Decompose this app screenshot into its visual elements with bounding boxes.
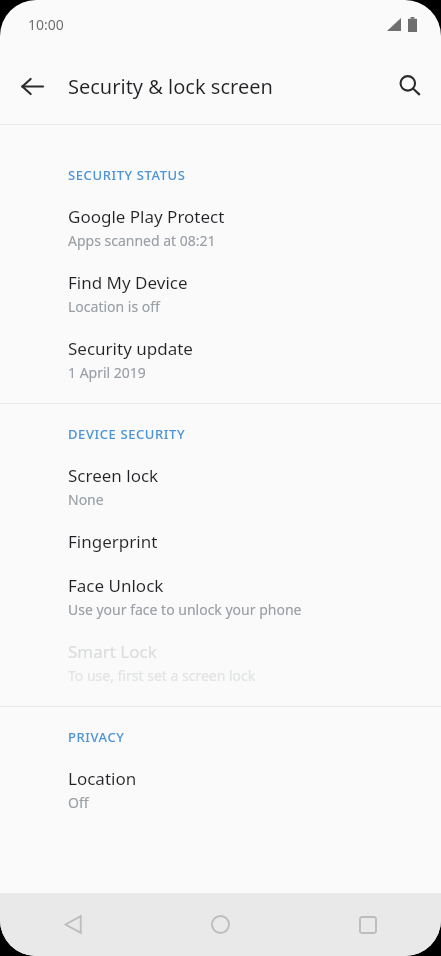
button[interactable]: Location — [0, 767, 441, 812]
button[interactable]: Home — [147, 893, 294, 956]
button[interactable]: Smart Lock — [0, 640, 441, 685]
button[interactable]: Security update — [0, 337, 441, 382]
staticText: Off — [68, 793, 89, 812]
staticText: DEVICE SECURITY — [68, 425, 186, 443]
button[interactable]: Back — [8, 62, 56, 110]
staticText: Screen lock — [68, 464, 159, 487]
button[interactable]: Fingerprint — [0, 530, 441, 553]
staticText: Find My Device — [68, 271, 188, 294]
button[interactable]: Face Unlock — [0, 574, 441, 619]
button[interactable]: Google Play Protect — [0, 205, 441, 250]
staticText: Smart Lock — [68, 640, 157, 663]
staticText: SECURITY STATUS — [68, 166, 186, 184]
staticText: Apps scanned at 08:21 — [68, 231, 216, 250]
staticText: Face Unlock — [68, 574, 164, 597]
staticText: Google Play Protect — [68, 205, 225, 228]
staticText: 1 April 2019 — [68, 363, 146, 382]
staticText: 10:00 — [28, 15, 64, 34]
staticText: Location is off — [68, 297, 160, 316]
staticText: Fingerprint — [68, 530, 158, 553]
staticText: PRIVACY — [68, 728, 125, 746]
staticText: Location — [68, 767, 137, 790]
button[interactable]: Find My Device — [0, 271, 441, 316]
button[interactable]: Back — [0, 893, 147, 956]
button[interactable]: Recent apps — [294, 893, 441, 956]
button[interactable]: Search — [386, 62, 434, 110]
staticText: None — [68, 490, 104, 509]
button[interactable]: Screen lock — [0, 464, 441, 509]
staticText: Security & lock screen — [68, 73, 273, 100]
staticText: Use your face to unlock your phone — [68, 600, 302, 619]
staticText: Security update — [68, 337, 193, 360]
staticText: To use, first set a screen lock — [68, 666, 256, 685]
